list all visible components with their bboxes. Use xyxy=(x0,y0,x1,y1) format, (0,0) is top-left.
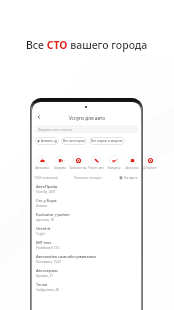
button[interactable]: МП inox xyxy=(32,238,141,252)
staticText: Толе би, 200Г xyxy=(36,190,56,194)
button[interactable]: Ремонт авто xyxy=(87,155,105,170)
staticText: Автомойка самообслуживания xyxy=(36,254,96,259)
button[interactable]: Введите текст поиска xyxy=(35,125,138,133)
staticText: Введите текст поиска xyxy=(38,127,73,131)
button[interactable]: Шиномонтаж xyxy=(69,155,87,170)
staticText: Эвакуатор xyxy=(105,166,123,170)
staticText: На карте xyxy=(124,176,138,180)
staticText: Детейлинг xyxy=(141,166,159,170)
button[interactable]: Детейлинг xyxy=(141,155,159,170)
button[interactable]: На карте xyxy=(119,176,138,180)
staticText: Orenhit xyxy=(36,226,51,231)
button[interactable]: Evaluator_ryadom xyxy=(32,210,141,224)
staticText: Сейфуллина, 48 xyxy=(36,288,59,292)
button[interactable]: Эвакуатор xyxy=(105,155,123,170)
staticText: Услуги для авто xyxy=(69,115,105,121)
button[interactable]: АвтоПрайд xyxy=(32,182,141,196)
staticText: Evaluator_ryadom xyxy=(36,212,70,217)
button[interactable]: Автосервис xyxy=(32,266,141,280)
staticText: Кунаева, 37 xyxy=(36,274,53,278)
staticText: Шиномонтаж xyxy=(69,166,87,170)
staticText: АвтоПрайд xyxy=(36,184,58,189)
staticText: Сто у Бори xyxy=(36,198,57,203)
button[interactable]: Сто у Бори xyxy=(32,196,141,210)
staticText: Coglol xyxy=(36,232,45,236)
staticText: Автомойка xyxy=(33,166,51,170)
staticText: Все марки и модели xyxy=(91,139,123,143)
button[interactable]: Алматы xyxy=(35,137,59,145)
button[interactable]: Orenhit xyxy=(32,224,141,238)
button[interactable]: Точка xyxy=(32,280,141,294)
staticText: Автосервис xyxy=(36,268,59,273)
staticText: Ремонт авто xyxy=(87,166,105,170)
staticText: арычная, 18 xyxy=(36,218,54,222)
button[interactable]: Все категории xyxy=(61,137,87,145)
button[interactable]: Автомойка xyxy=(33,155,51,170)
staticText: Полтавина, 152/1 xyxy=(36,260,62,264)
button[interactable]: Автосалон xyxy=(123,155,141,170)
button[interactable]: Автомойка самообслуживания xyxy=(32,252,141,266)
staticText: Точка xyxy=(36,282,47,287)
staticText: Все категории xyxy=(63,139,85,143)
staticText: 1043 компаний xyxy=(34,176,58,180)
staticText: Показать на карте xyxy=(74,176,103,180)
staticText: Алматы xyxy=(41,139,53,143)
staticText: Автосалон xyxy=(123,166,141,170)
button[interactable]: Заправка xyxy=(51,155,69,170)
staticText: МП inox xyxy=(36,240,52,245)
button[interactable]: Все марки и модели xyxy=(89,137,125,145)
staticText: Алматы xyxy=(36,204,48,208)
button[interactable]: Back xyxy=(34,112,43,121)
staticText: Все СТО вашего города xyxy=(26,38,148,52)
staticText: Ремибков 6 СТО xyxy=(36,246,60,250)
staticText: Заправка xyxy=(51,166,69,170)
